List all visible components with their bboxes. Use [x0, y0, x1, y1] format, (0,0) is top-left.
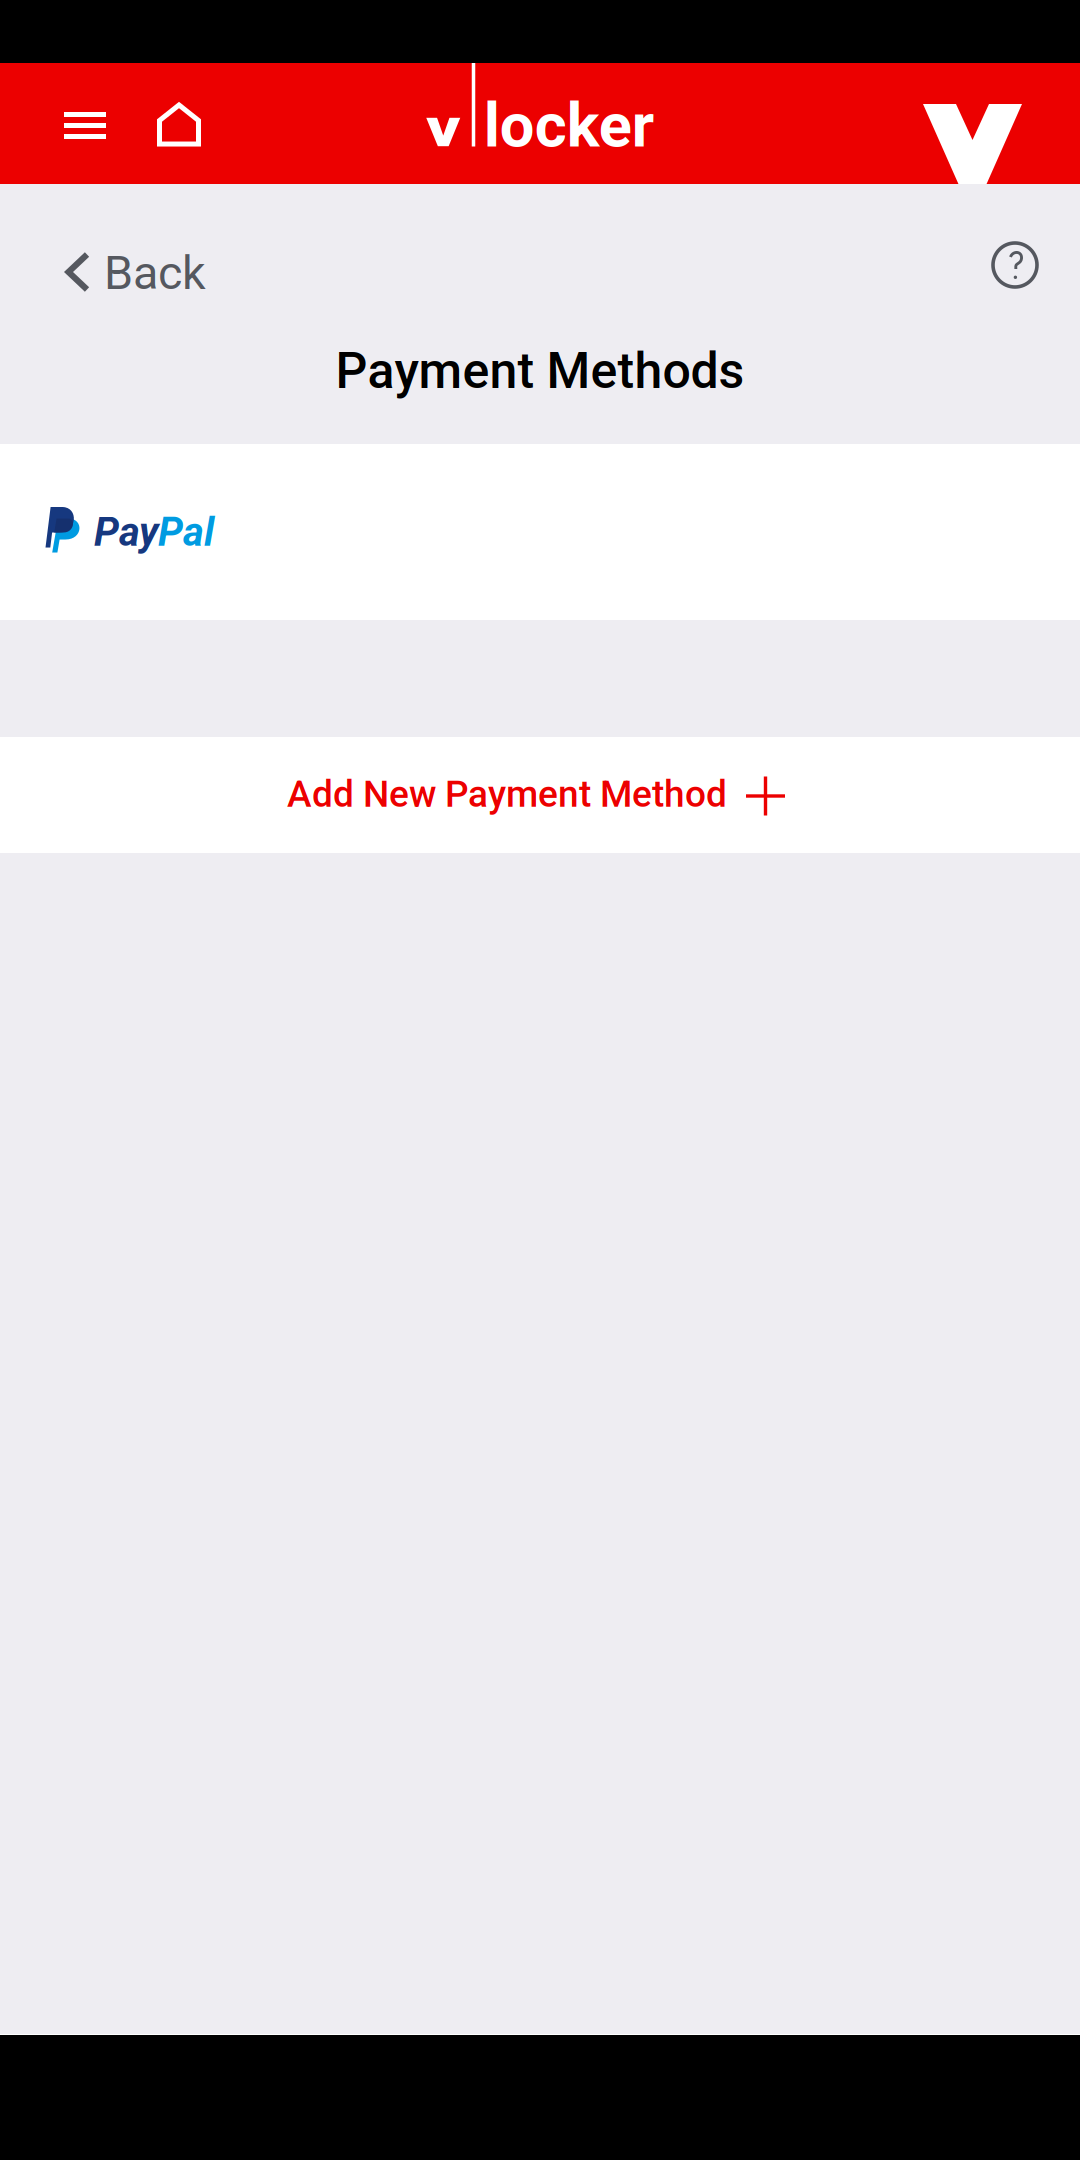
staticText: Back — [104, 246, 206, 300]
button[interactable]: Pay — [0, 444, 1080, 620]
button[interactable]: Home — [156, 63, 200, 184]
staticText: Payment Methods — [335, 342, 744, 400]
button[interactable]: Menu — [63, 63, 105, 184]
button[interactable]: Help — [970, 184, 1080, 316]
staticText: Add New Payment Method — [287, 772, 727, 816]
button[interactable]: Back — [0, 184, 227, 316]
staticText: locker — [484, 90, 654, 161]
button[interactable]: Add New Payment Method — [0, 737, 1080, 853]
staticText: Pal — [158, 509, 214, 555]
staticText: Pay — [94, 509, 159, 555]
